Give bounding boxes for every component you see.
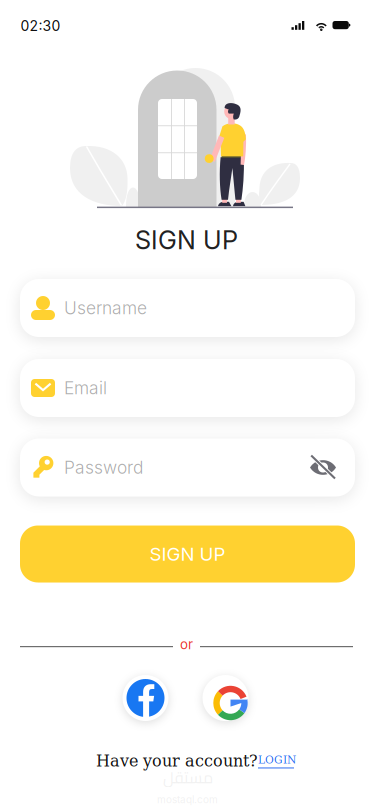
button[interactable]: Sign up with Facebook bbox=[122, 675, 168, 721]
staticText: Have your account? bbox=[96, 752, 258, 770]
staticText: مستقل bbox=[162, 762, 212, 792]
staticText: LOGIN bbox=[258, 753, 296, 766]
button[interactable]: SIGN UP bbox=[20, 525, 355, 582]
staticText: mostaql.com bbox=[157, 793, 218, 805]
staticText: SIGN UP bbox=[149, 543, 225, 565]
button[interactable]: Password bbox=[20, 438, 355, 496]
staticText: Username bbox=[64, 297, 147, 318]
button[interactable]: LOGIN bbox=[258, 753, 296, 768]
staticText: SIGN UP bbox=[135, 225, 238, 255]
staticText: 02:30 bbox=[20, 17, 60, 34]
staticText: Email bbox=[64, 377, 107, 398]
staticText: Password bbox=[64, 457, 143, 478]
staticText: or bbox=[180, 636, 193, 652]
button[interactable]: Sign up with Google bbox=[202, 675, 248, 721]
button[interactable]: Email bbox=[20, 359, 355, 417]
button[interactable]: Username bbox=[20, 279, 355, 337]
